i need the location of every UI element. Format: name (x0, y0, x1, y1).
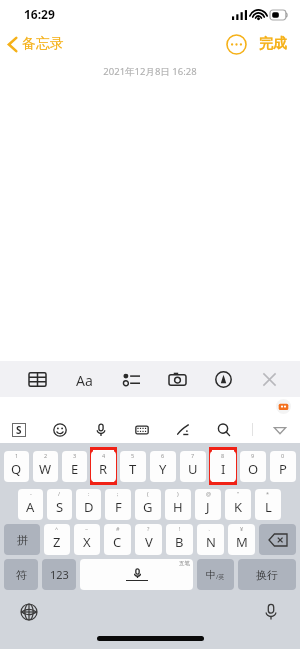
button[interactable]: 五笔 (80, 559, 193, 590)
staticText: S (56, 498, 64, 516)
staticText: * (266, 490, 270, 497)
button[interactable]: 5 (120, 451, 146, 482)
staticText: # (116, 525, 120, 532)
staticText: /英 (216, 573, 225, 581)
staticText: 123 (50, 567, 69, 582)
button[interactable]: ¥ (228, 524, 255, 555)
staticText: Aa (76, 371, 93, 388)
staticText: X (83, 533, 91, 551)
button[interactable]: ! (166, 524, 193, 555)
staticText: D (84, 498, 94, 516)
button[interactable]: Hide keyboard (254, 364, 284, 394)
button[interactable]: Sogou (6, 417, 31, 442)
button[interactable]: 换行 (238, 559, 296, 590)
button[interactable]: 8 (210, 451, 236, 482)
button[interactable]: 、 (197, 524, 224, 555)
button[interactable]: @ (195, 489, 221, 520)
button[interactable]: 完成 (256, 31, 290, 57)
button[interactable]: 3 (62, 451, 87, 482)
staticText: 0 (281, 452, 285, 459)
staticText: 备忘录 (22, 35, 64, 53)
button[interactable]: 1 (4, 451, 29, 482)
staticText: J (206, 498, 210, 516)
button[interactable]: 中 (197, 559, 234, 590)
staticText: 2 (44, 452, 48, 459)
staticText: 2021年12月8日 16:28 (103, 65, 197, 78)
button[interactable]: Search (211, 417, 236, 442)
staticText: ~ (85, 525, 89, 532)
staticText: M (236, 533, 248, 551)
staticText: G (143, 498, 153, 516)
staticText: 9 (251, 452, 255, 459)
staticText: R (99, 460, 108, 478)
button[interactable]: 符 (4, 559, 38, 590)
staticText: 完成 (259, 35, 287, 53)
button[interactable]: Collapse (267, 417, 292, 442)
staticText: L (265, 498, 272, 516)
staticText: " (237, 490, 240, 497)
button[interactable]: Voice input (88, 417, 113, 442)
button[interactable]: Table (22, 364, 52, 394)
staticText: ! (179, 525, 181, 532)
staticText: C (113, 533, 122, 551)
button[interactable]: Text format (69, 364, 99, 394)
staticText: T (129, 460, 137, 478)
staticText: U (188, 460, 198, 478)
button[interactable]: " (225, 489, 251, 520)
staticText: 、 (208, 525, 214, 532)
button[interactable]: : (76, 489, 101, 520)
staticText: H (173, 498, 183, 516)
button[interactable]: ~ (74, 524, 100, 555)
staticText: ? (147, 525, 150, 532)
staticText: 3 (73, 452, 77, 459)
button[interactable]: - (18, 489, 43, 520)
staticText: O (248, 460, 259, 478)
button[interactable]: Keyboard layout (129, 417, 154, 442)
button[interactable]: ; (105, 489, 131, 520)
staticText: 7 (191, 452, 195, 459)
button[interactable]: ? (135, 524, 162, 555)
staticText: W (39, 460, 52, 478)
button[interactable]: 7 (180, 451, 206, 482)
button[interactable]: ^ (44, 524, 70, 555)
staticText: ¥ (240, 525, 244, 532)
staticText: Y (159, 460, 167, 478)
button[interactable]: Backspace (259, 524, 296, 555)
staticText: 6 (161, 452, 165, 459)
button[interactable]: 6 (150, 451, 176, 482)
staticText: I (221, 460, 226, 478)
button[interactable]: 备忘录 (0, 31, 72, 57)
button[interactable]: 拼 (4, 524, 40, 555)
staticText: N (206, 533, 216, 551)
button[interactable]: 2 (33, 451, 58, 482)
button[interactable]: ) (165, 489, 191, 520)
button[interactable]: Sogou assistant (276, 399, 291, 414)
button[interactable]: Handwriting (170, 417, 195, 442)
staticText: F (115, 498, 122, 516)
button[interactable]: ( (135, 489, 161, 520)
button[interactable]: Emoji (47, 417, 72, 442)
staticText: Z (53, 533, 61, 551)
button[interactable]: 9 (240, 451, 266, 482)
staticText: ^ (55, 525, 59, 532)
staticText: 符 (16, 568, 27, 582)
button[interactable]: / (47, 489, 72, 520)
button[interactable]: Checklist (116, 364, 146, 394)
staticText: V (145, 533, 153, 551)
staticText: 4 (102, 452, 106, 459)
staticText: 1 (15, 452, 19, 459)
button[interactable]: More options (226, 34, 247, 55)
button[interactable]: Markup (208, 364, 238, 394)
staticText: - (30, 490, 32, 497)
button[interactable]: Camera (162, 364, 192, 394)
button[interactable]: # (104, 524, 131, 555)
button[interactable]: 0 (270, 451, 296, 482)
staticText: @ (206, 490, 211, 497)
button[interactable]: Switch keyboard (20, 603, 38, 621)
staticText: S (16, 423, 22, 437)
button[interactable]: * (255, 489, 281, 520)
staticText: B (175, 533, 184, 551)
button[interactable]: 123 (42, 559, 76, 590)
button[interactable]: Dictation (262, 603, 280, 621)
button[interactable]: 4 (91, 451, 116, 482)
